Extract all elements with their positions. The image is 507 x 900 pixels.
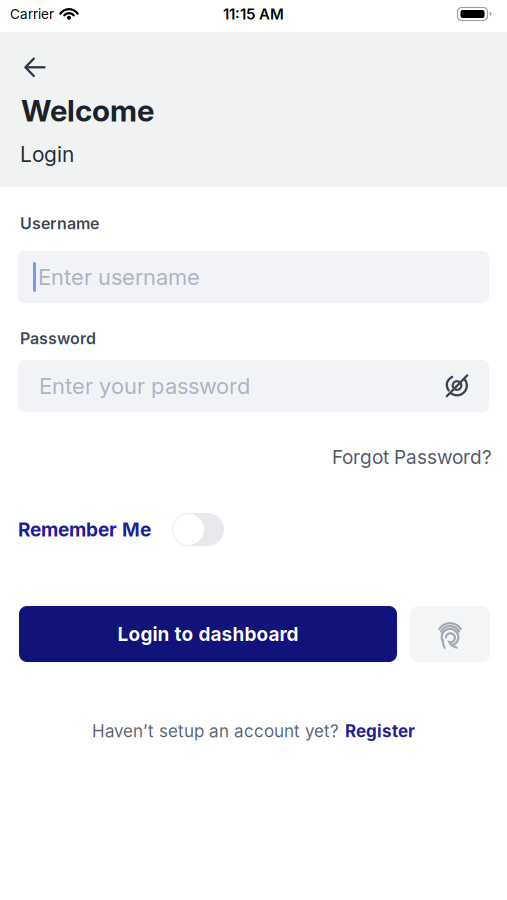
staticText: Carrier (10, 6, 54, 22)
staticText: Enter username (38, 264, 200, 290)
button[interactable] (410, 606, 490, 662)
staticText: Username (20, 214, 99, 233)
button[interactable] (24, 57, 46, 78)
staticText: Login (20, 142, 74, 167)
staticText: Forgot Password? (332, 446, 492, 468)
staticText: 11:15 AM (223, 5, 284, 23)
button[interactable]: Remember Me (18, 513, 224, 546)
staticText: Password (20, 329, 96, 348)
button[interactable]: Enter your password (18, 360, 489, 412)
staticText: Welcome (21, 93, 154, 128)
button[interactable]: Register (345, 721, 415, 741)
button[interactable]: Forgot Password? (332, 446, 492, 468)
button[interactable]: Login to dashboard (19, 606, 397, 662)
staticText: Haven’t setup an account yet? (92, 721, 339, 741)
staticText: Login to dashboard (117, 623, 298, 645)
button[interactable]: Enter username (18, 251, 489, 303)
staticText: Register (345, 721, 415, 741)
staticText: Enter your password (39, 373, 250, 399)
staticText: Remember Me (18, 518, 151, 541)
